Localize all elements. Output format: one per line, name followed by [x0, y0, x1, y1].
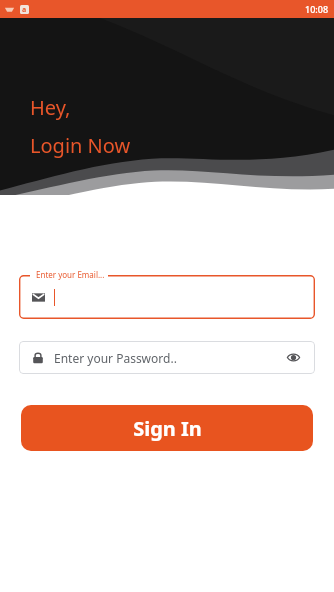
button[interactable]: Sign In: [21, 405, 313, 451]
staticText: Login Now: [30, 132, 131, 159]
button[interactable]: Enter your Email...: [19, 275, 315, 319]
staticText: a: [22, 5, 27, 14]
button[interactable]: Enter your Password..: [19, 341, 315, 374]
staticText: 10:08: [305, 3, 329, 15]
staticText: Enter your Password..: [54, 350, 285, 366]
staticText: Sign In: [133, 415, 202, 442]
staticText: Enter your Email...: [36, 269, 105, 280]
staticText: Hey,: [30, 94, 71, 121]
button[interactable]: Show password: [285, 349, 302, 366]
